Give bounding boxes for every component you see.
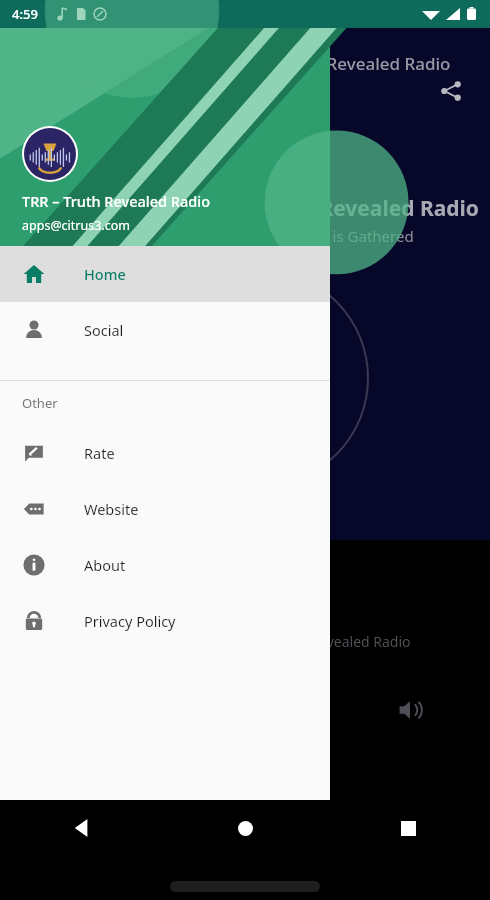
staticText: Social: [84, 320, 124, 340]
staticText: TRR – Truth Revealed Radio: [232, 632, 411, 651]
button[interactable]: About: [0, 537, 330, 593]
button[interactable]: Rate: [0, 425, 330, 481]
button[interactable]: Home: [0, 246, 330, 302]
staticText: 4:59: [12, 5, 38, 23]
staticText: TRR – Truth Revealed Radio: [196, 194, 479, 223]
button[interactable]: Home: [164, 800, 327, 856]
staticText: About: [84, 555, 126, 575]
staticText: Other: [22, 394, 58, 412]
button[interactable]: Back: [0, 800, 164, 856]
staticText: Where the Truth is Gathered: [214, 226, 414, 246]
button[interactable]: Volume: [388, 688, 432, 732]
staticText: TRR – Truth Revealed Radio: [22, 191, 211, 211]
button[interactable]: Share: [428, 68, 474, 114]
staticText: Privacy Policy: [84, 611, 176, 631]
staticText: Website: [84, 499, 139, 519]
staticText: Rate: [84, 443, 115, 463]
button[interactable]: Privacy Policy: [0, 593, 330, 649]
staticText: apps@citrus3.com: [22, 217, 130, 234]
button[interactable]: Website: [0, 481, 330, 537]
button[interactable]: Recent apps: [327, 800, 490, 856]
staticText: TRR – Truth Revealed Radio: [230, 52, 451, 75]
button[interactable]: Social: [0, 302, 330, 358]
staticText: Home: [84, 264, 126, 284]
